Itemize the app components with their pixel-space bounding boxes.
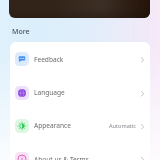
staticText: Feedback [34,55,64,64]
staticText: About us & Terms [34,155,89,160]
button[interactable]: Appearance [10,109,150,142]
staticText: Appearance [34,121,71,130]
button[interactable]: Language [10,76,150,109]
button[interactable]: About us & Terms [10,142,150,160]
staticText: Automatic [109,122,136,130]
button[interactable]: Feedback [10,42,150,76]
staticText: More [12,27,30,37]
staticText: Language [34,88,65,97]
